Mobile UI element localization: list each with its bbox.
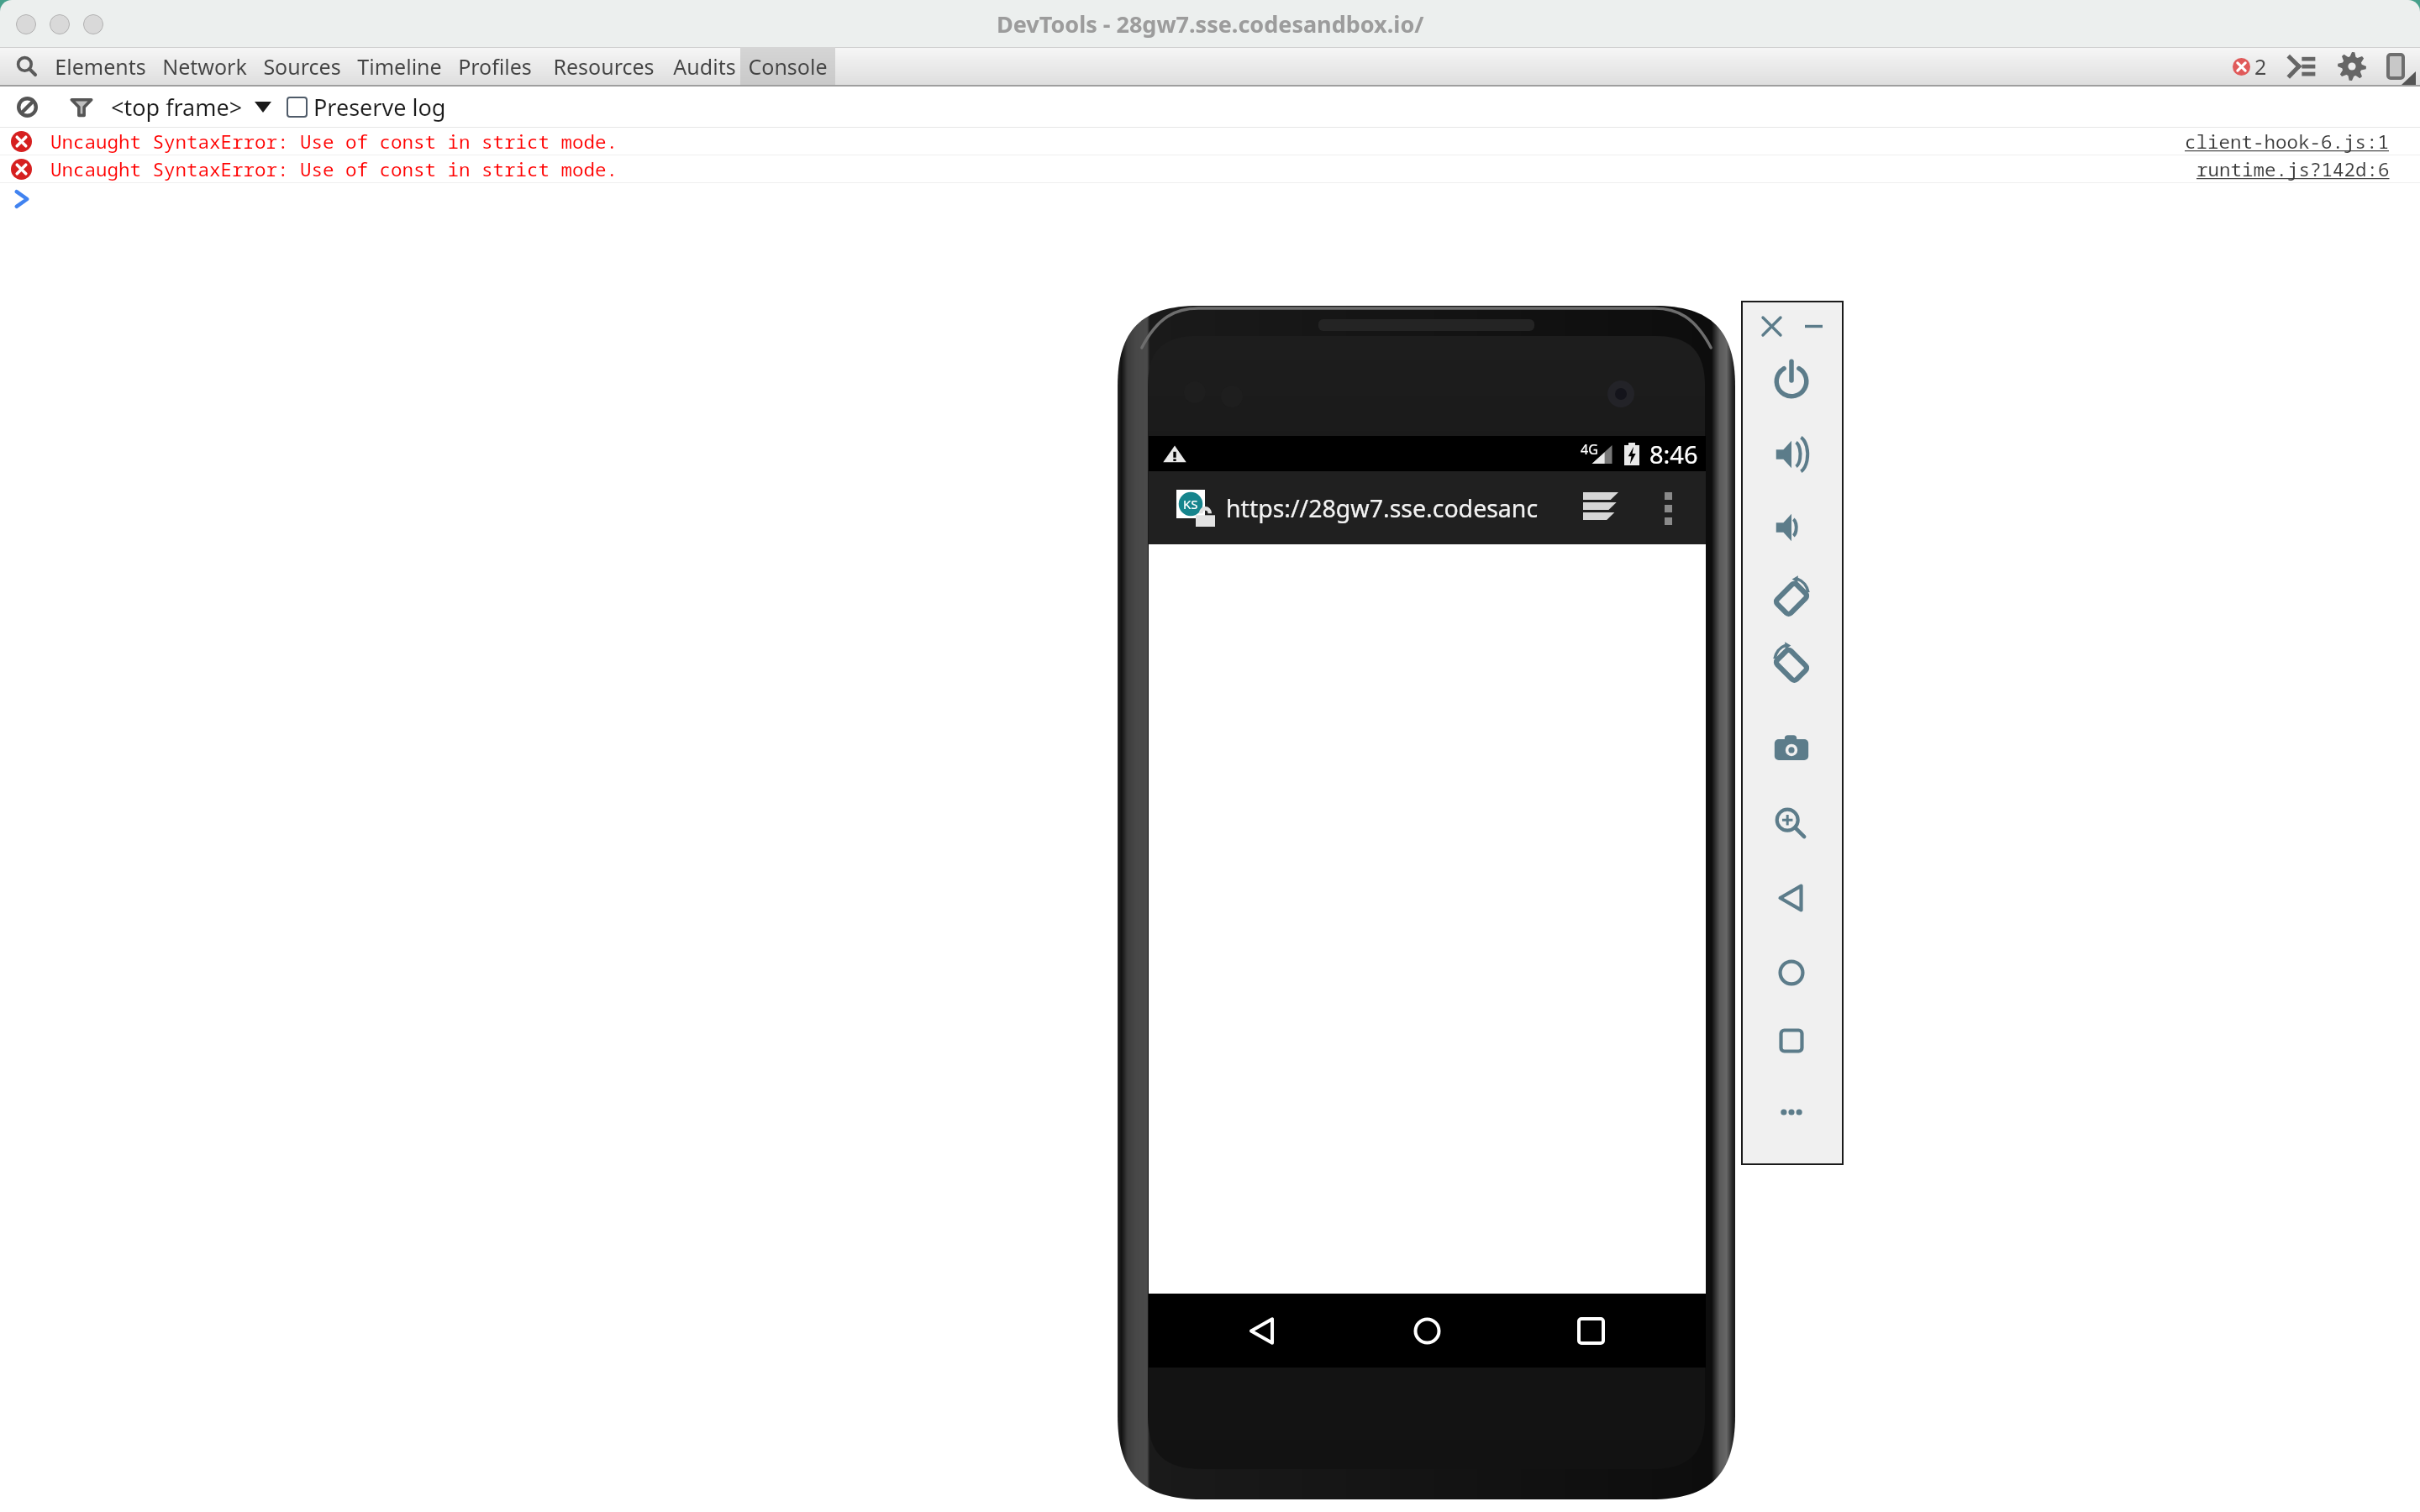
- button[interactable]: Back: [1768, 874, 1815, 921]
- button[interactable]: Volume up: [1768, 431, 1815, 478]
- staticText: Network: [162, 52, 247, 81]
- staticText: client-hook-6.js:1: [2185, 129, 2390, 155]
- staticText: Profiles: [458, 52, 532, 81]
- staticText: DevTools - 28gw7.sse.codesandbox.io/: [997, 8, 1424, 39]
- button[interactable]: Clear console: [15, 95, 39, 118]
- staticText: https://28gw7.sse.codesanc: [1226, 492, 1539, 525]
- button[interactable]: Back: [1248, 1317, 1276, 1345]
- button[interactable]: Sources: [255, 47, 349, 86]
- staticText: Resources: [553, 52, 655, 81]
- button[interactable]: Window control: [83, 14, 103, 34]
- button[interactable]: Close: [1756, 311, 1786, 341]
- button[interactable]: Network: [154, 47, 255, 86]
- staticText: Sources: [263, 52, 341, 81]
- staticText: 2: [2254, 52, 2267, 81]
- button[interactable]: Tabs: [1583, 492, 1618, 520]
- button[interactable]: Recent apps: [1768, 1017, 1815, 1064]
- button[interactable]: Preserve log: [287, 87, 446, 127]
- button[interactable]: <top frame>: [111, 87, 271, 127]
- button[interactable]: Show console drawer: [2289, 55, 2316, 78]
- button[interactable]: Home: [1413, 1317, 1441, 1345]
- staticText: Audits: [673, 52, 736, 81]
- button[interactable]: Console: [740, 47, 835, 86]
- staticText: Preserve log: [313, 92, 446, 123]
- button[interactable]: Settings: [2338, 52, 2366, 81]
- staticText: runtime.js?142d:6: [2196, 156, 2390, 182]
- button[interactable]: Resources: [539, 47, 668, 86]
- button[interactable]: Profiles: [450, 47, 539, 86]
- staticText: Timeline: [357, 52, 442, 81]
- staticText: Uncaught SyntaxError: Use of const in st…: [50, 156, 618, 182]
- button[interactable]: Errors: [2233, 52, 2267, 81]
- staticText: <top frame>: [111, 92, 243, 123]
- staticText: Console: [748, 52, 828, 81]
- staticText: KS: [1183, 496, 1198, 512]
- button[interactable]: Window control: [50, 14, 70, 34]
- button[interactable]: Rotate left: [1768, 638, 1815, 685]
- button[interactable]: Power: [1768, 356, 1815, 403]
- button[interactable]: More options: [1665, 492, 1672, 525]
- button[interactable]: Audits: [668, 47, 740, 86]
- staticText: Uncaught SyntaxError: Use of const in st…: [50, 129, 618, 155]
- staticText: Elements: [55, 52, 146, 81]
- button[interactable]: More: [1768, 1089, 1815, 1136]
- staticText: 8:46: [1649, 438, 1698, 470]
- button[interactable]: Volume down: [1768, 504, 1815, 551]
- button[interactable]: Home: [1768, 949, 1815, 996]
- button[interactable]: Recent apps: [1579, 1319, 1603, 1343]
- button[interactable]: Toggle device mode: [2386, 53, 2405, 80]
- staticText: 4G: [1581, 440, 1598, 459]
- button[interactable]: Rotate right: [1768, 572, 1815, 619]
- button[interactable]: Search: [13, 53, 40, 80]
- button[interactable]: Minimize: [1798, 311, 1828, 341]
- button[interactable]: Elements: [46, 47, 154, 86]
- button[interactable]: Timeline: [349, 47, 450, 86]
- button[interactable]: Screenshot: [1768, 726, 1815, 773]
- button[interactable]: Filter: [70, 95, 93, 118]
- button[interactable]: Zoom in: [1768, 801, 1815, 848]
- button[interactable]: Window control: [16, 14, 36, 34]
